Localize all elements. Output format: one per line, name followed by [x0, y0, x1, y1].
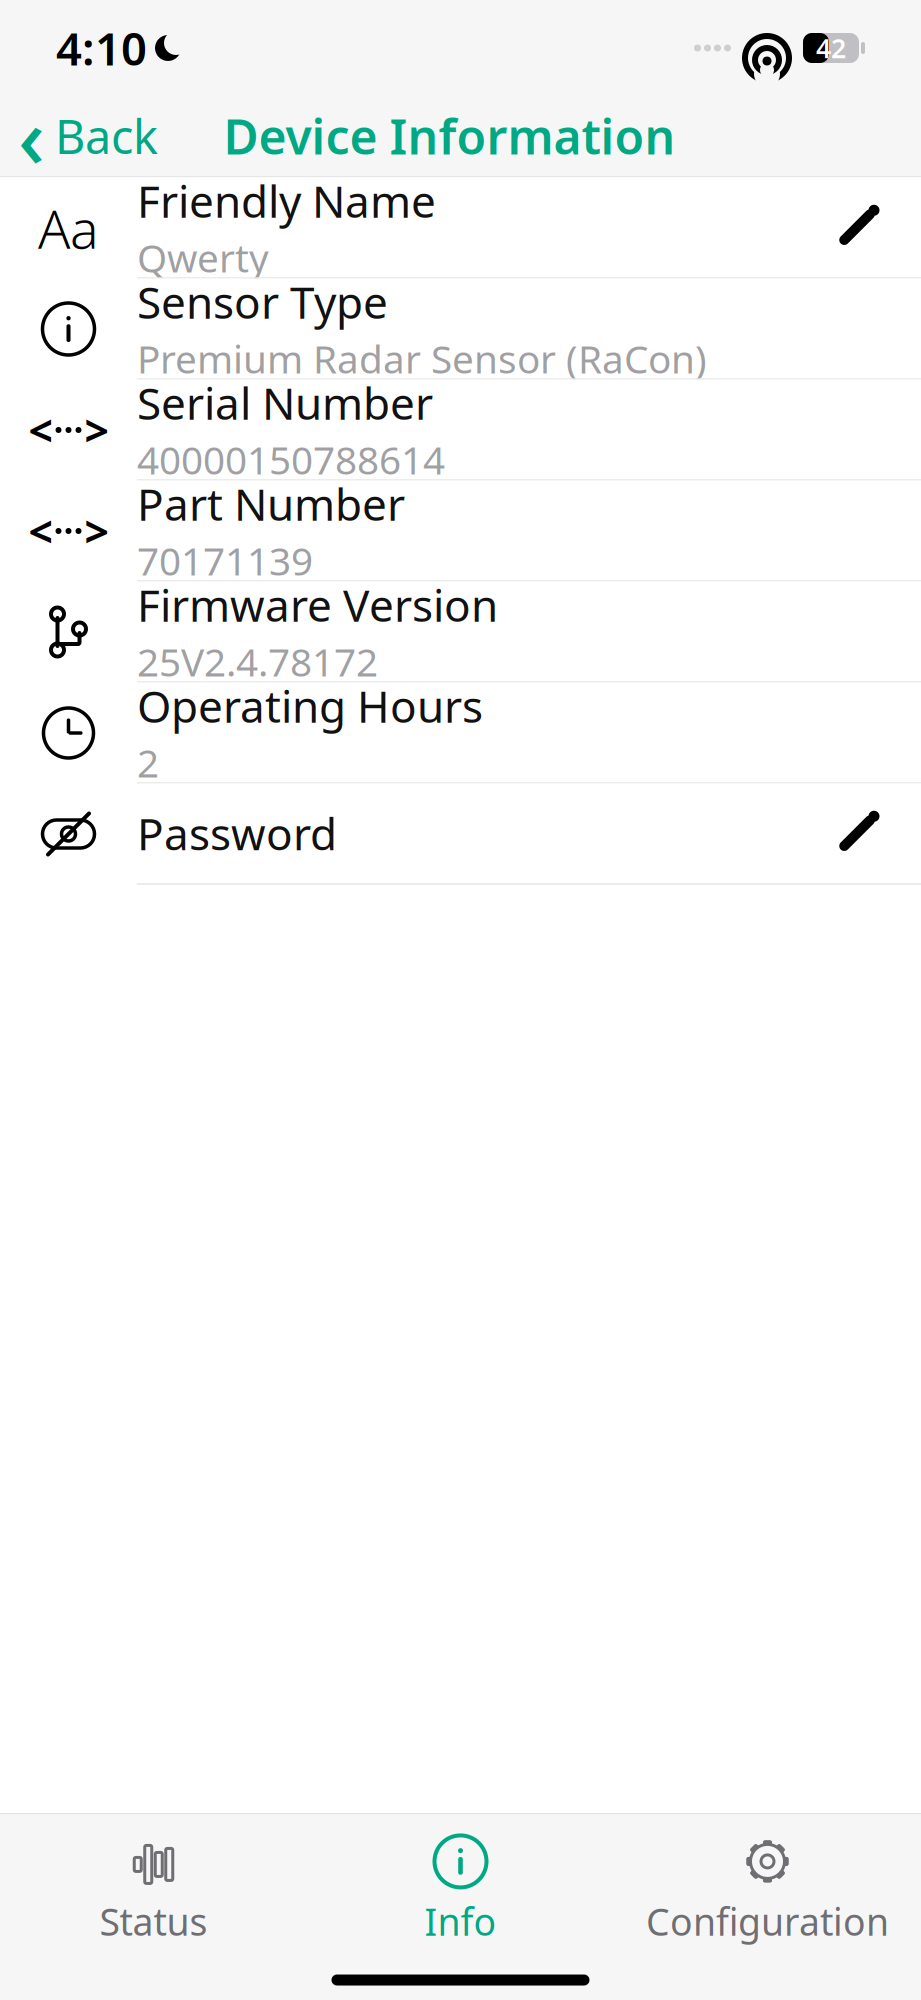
- staticText: Device Information: [223, 104, 675, 168]
- staticText: Qwerty: [137, 232, 269, 283]
- button[interactable]: Configuration: [614, 1814, 921, 1960]
- staticText: 2: [137, 737, 159, 788]
- staticText: Configuration: [646, 1896, 889, 1946]
- button[interactable]: Password: [0, 783, 921, 884]
- staticText: Back: [55, 105, 158, 167]
- staticText: >: [84, 402, 108, 458]
- staticText: Friendly Name: [137, 171, 436, 230]
- button[interactable]: Firmware Version: [0, 581, 921, 682]
- staticText: <: [28, 402, 52, 458]
- button[interactable]: Status: [0, 1814, 307, 1960]
- staticText: 4:10: [56, 18, 147, 78]
- staticText: ‹: [18, 81, 45, 191]
- button[interactable]: ‹: [0, 101, 168, 171]
- staticText: <: [28, 503, 52, 559]
- button[interactable]: Operating Hours: [0, 682, 921, 783]
- staticText: 40000150788614: [137, 434, 445, 485]
- staticText: >: [84, 503, 108, 559]
- button[interactable]: Sensor Type: [0, 278, 921, 379]
- staticText: Serial Number: [137, 373, 433, 432]
- staticText: 42: [816, 30, 846, 66]
- button[interactable]: <: [0, 480, 921, 581]
- staticText: Status: [99, 1896, 207, 1946]
- button[interactable]: <: [0, 379, 921, 480]
- button[interactable]: Info: [307, 1814, 614, 1960]
- button[interactable]: Aa: [0, 177, 921, 278]
- staticText: Password: [137, 804, 337, 862]
- staticText: Sensor Type: [137, 272, 388, 331]
- staticText: Info: [424, 1896, 496, 1946]
- staticText: Firmware Version: [137, 575, 498, 634]
- staticText: Part Number: [137, 474, 405, 533]
- staticText: 70171139: [137, 535, 313, 586]
- staticText: Premium Radar Sensor (RaCon): [137, 333, 707, 384]
- staticText: Operating Hours: [137, 676, 483, 735]
- staticText: 25V2.4.78172: [137, 636, 378, 687]
- staticText: Aa: [38, 193, 99, 263]
